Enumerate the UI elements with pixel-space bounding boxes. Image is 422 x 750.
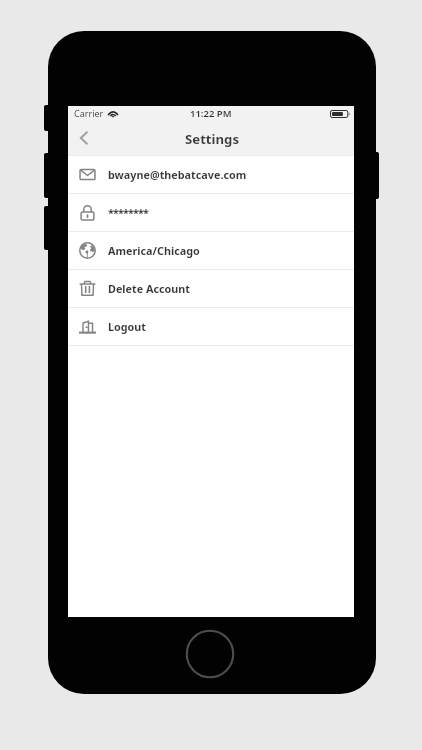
button[interactable]: ******** [68,194,354,231]
button[interactable]: Delete Account [68,270,354,307]
staticText: 11:22 PM [190,107,232,120]
staticText: ******** [108,205,149,220]
staticText: Settings [185,130,240,148]
staticText: bwayne@thebatcave.com [108,167,247,182]
staticText: Logout [108,319,147,334]
staticText: Carrier [74,107,104,119]
staticText: America/Chicago [108,243,200,258]
staticText: Delete Account [108,281,191,296]
button[interactable]: America/Chicago [68,232,354,269]
button[interactable]: Home [186,630,234,678]
button[interactable]: bwayne@thebatcave.com [68,156,354,193]
button[interactable]: Back [68,127,94,155]
button[interactable]: Logout [68,308,354,345]
